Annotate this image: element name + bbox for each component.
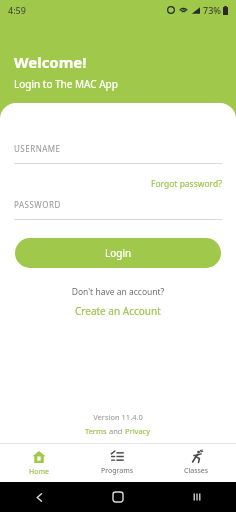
button[interactable]: Privacy [125,426,151,436]
staticText: 73% [203,4,221,16]
staticText: Classes [184,466,209,476]
staticText: Don't have an account? [0,286,236,298]
button[interactable]: Recent apps [157,482,236,512]
staticText: and [107,426,125,436]
button[interactable]: Terms [85,426,107,436]
button[interactable]: Programs [78,444,157,482]
staticText: Home [29,467,49,477]
staticText: Login to The MAC App [14,77,118,91]
button[interactable]: Forgot password? [151,178,222,190]
staticText: Version 11.4.0 [0,412,236,422]
staticText: USERNAME [14,143,61,154]
staticText: PASSWORD [14,199,61,210]
staticText: Welcome! [14,52,87,72]
staticText: Terms [85,426,107,436]
staticText: Login [105,246,132,260]
staticText: Create an Account [75,304,161,318]
button[interactable]: Classes [157,444,236,482]
button[interactable]: Login [15,238,221,268]
button[interactable]: Home [0,444,78,482]
staticText: 4:59 [8,4,26,16]
button[interactable]: Create an Account [75,304,161,318]
staticText: Privacy [125,426,151,436]
staticText: Programs [101,466,134,476]
button[interactable]: Home [78,482,157,512]
button[interactable]: Back [0,482,78,512]
staticText: Forgot password? [151,178,222,190]
